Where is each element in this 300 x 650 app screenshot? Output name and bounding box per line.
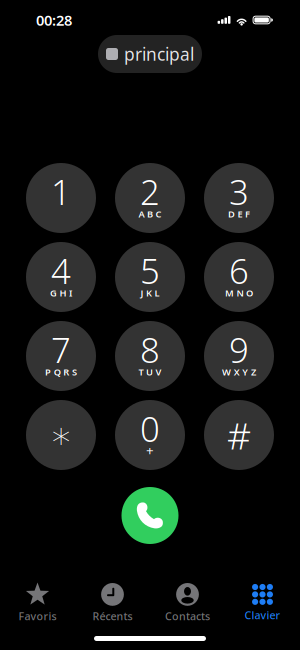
button[interactable]: 6 — [204, 242, 274, 312]
staticText: + — [146, 441, 154, 459]
button[interactable]: Favoris — [0, 580, 75, 626]
staticText: JKL — [140, 287, 160, 299]
button[interactable]: 0 — [115, 400, 185, 470]
button[interactable]: 4 — [26, 242, 96, 312]
staticText: Favoris — [18, 609, 56, 623]
staticText: Contacts — [165, 609, 210, 623]
button[interactable]: 9 — [204, 321, 274, 391]
button[interactable]: Appeler — [121, 487, 178, 544]
staticText: 2 — [140, 168, 160, 214]
staticText: GHI — [50, 287, 72, 299]
staticText: PQRS — [45, 366, 77, 378]
staticText: # — [227, 410, 251, 460]
button[interactable]: Contacts — [150, 580, 225, 626]
button[interactable]: 5 — [115, 242, 185, 312]
staticText: 9 — [229, 326, 249, 372]
button[interactable]: 2 — [115, 163, 185, 233]
button[interactable]: ∗ — [26, 400, 96, 470]
staticText: WXYZ — [222, 366, 256, 378]
staticText: TUV — [138, 366, 162, 378]
staticText: DEF — [228, 208, 250, 220]
button[interactable]: Récents — [75, 580, 150, 626]
staticText: 5 — [140, 247, 160, 293]
staticText: 6 — [229, 247, 249, 293]
staticText: 00:28 — [36, 10, 72, 30]
button[interactable]: 8 — [115, 321, 185, 391]
staticText: Récents — [92, 609, 132, 623]
staticText: 7 — [51, 326, 71, 372]
button[interactable]: # — [204, 400, 274, 470]
staticText: Clavier — [244, 608, 280, 622]
button[interactable]: Clavier — [225, 580, 300, 626]
staticText: MNO — [225, 287, 253, 299]
staticText: ABC — [138, 208, 162, 220]
button[interactable]: 3 — [204, 163, 274, 233]
button[interactable]: 1 — [26, 163, 96, 233]
staticText: principal — [124, 42, 194, 65]
button[interactable]: 7 — [26, 321, 96, 391]
staticText: 1 — [51, 168, 71, 214]
staticText: 4 — [51, 247, 71, 293]
staticText: 3 — [229, 168, 249, 214]
staticText: 0 — [140, 405, 160, 451]
staticText: 8 — [140, 326, 160, 372]
button[interactable]: principal — [98, 35, 202, 73]
staticText: ∗ — [49, 414, 72, 456]
